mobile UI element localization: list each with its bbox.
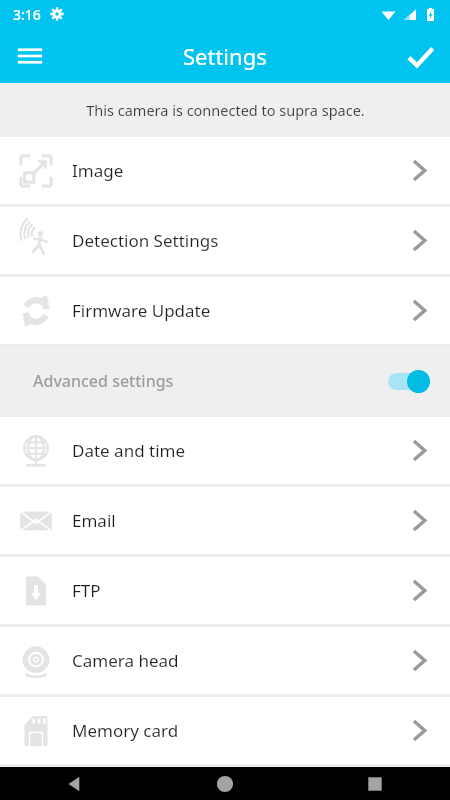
button[interactable]: FTP [0, 557, 450, 624]
button[interactable]: Confirm settings [396, 32, 444, 80]
staticText: Camera head [72, 649, 386, 672]
staticText: Settings [183, 41, 267, 71]
staticText: Firmware Update [72, 299, 386, 322]
button[interactable]: Home [150, 767, 300, 800]
staticText: Image [72, 159, 386, 182]
button[interactable]: Advanced settings [0, 347, 450, 414]
button[interactable]: Image [0, 137, 450, 204]
button[interactable]: Camera head [0, 627, 450, 694]
button[interactable]: Recent apps [300, 767, 450, 800]
button[interactable]: Detection Settings [0, 207, 450, 274]
button[interactable]: Back [0, 767, 150, 800]
button[interactable]: Email [0, 487, 450, 554]
staticText: Memory card [72, 719, 386, 742]
button[interactable]: Open navigation menu [6, 32, 54, 80]
button[interactable]: Memory card [0, 697, 450, 764]
staticText: Detection Settings [72, 229, 386, 252]
button[interactable]: Date and time [0, 417, 450, 484]
staticText: FTP [72, 579, 386, 602]
staticText: This camera is connected to supra space. [86, 100, 365, 120]
staticText: Date and time [72, 439, 386, 462]
button[interactable]: Firmware Update [0, 277, 450, 344]
staticText: 3:16 [13, 5, 41, 24]
staticText: Advanced settings [33, 370, 384, 392]
staticText: Email [72, 509, 386, 532]
